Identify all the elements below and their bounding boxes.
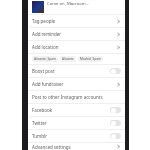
staticText: Boost post (32, 68, 55, 74)
button[interactable]: Boost post (28, 65, 125, 77)
staticText: Advanced settings (32, 144, 71, 150)
staticText: Add location (32, 44, 59, 50)
button[interactable]: Add location (28, 41, 125, 53)
button[interactable]: Alicante, Spain (32, 56, 58, 62)
button[interactable]: Toggle (110, 120, 121, 126)
button[interactable]: Twitter (28, 117, 125, 129)
button[interactable]: Madrid, Spain (78, 56, 103, 62)
staticText: Facebook (32, 107, 53, 113)
staticText: Tumblr (32, 133, 48, 139)
button[interactable]: Add fundraiser (28, 78, 125, 90)
staticText: Tag people (32, 18, 56, 24)
button[interactable]: Toggle (110, 68, 121, 74)
staticText: Add fundraiser (32, 81, 64, 87)
staticText: Twitter (32, 120, 47, 126)
button[interactable]: Facebook (28, 104, 125, 116)
staticText: Alicante, Spain (34, 57, 56, 61)
button[interactable]: Tag people (28, 15, 125, 27)
staticText: Madrid, Spain (80, 57, 101, 61)
button[interactable]: Alicante (60, 56, 76, 62)
button[interactable]: Toggle (110, 133, 121, 139)
button[interactable]: Tumblr (28, 130, 125, 142)
button[interactable]: Post to other Instagram accounts (28, 91, 125, 103)
staticText: Come on, Macroom... (47, 1, 90, 7)
staticText: Alicante (62, 57, 74, 61)
button[interactable]: Add reminder (28, 28, 125, 40)
staticText: Post to other Instagram accounts (32, 94, 103, 100)
button[interactable]: Toggle (110, 107, 121, 113)
staticText: Add reminder (32, 31, 62, 37)
button[interactable]: Advanced settings (28, 143, 125, 150)
